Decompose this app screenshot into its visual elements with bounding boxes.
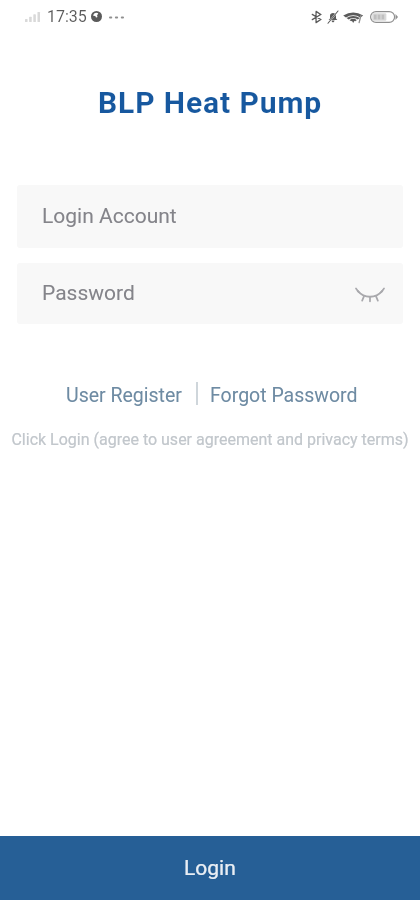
staticText: Click Login (agree to user agreement and… <box>0 430 420 449</box>
staticText: 17:35 <box>47 7 87 26</box>
staticText: User Register <box>66 384 182 407</box>
staticText: Login Account <box>42 204 177 229</box>
staticText: Forgot Password <box>210 384 358 407</box>
button[interactable]: Login <box>0 836 420 900</box>
staticText: BLP Heat Pump <box>0 85 420 120</box>
button[interactable]: Show password <box>353 277 387 311</box>
button[interactable]: Login Account <box>17 185 403 248</box>
button[interactable]: User Register <box>66 382 182 408</box>
staticText: Login <box>184 856 236 881</box>
button[interactable]: Forgot Password <box>210 382 358 408</box>
button[interactable]: Password <box>17 263 403 324</box>
staticText: Password <box>42 281 135 306</box>
